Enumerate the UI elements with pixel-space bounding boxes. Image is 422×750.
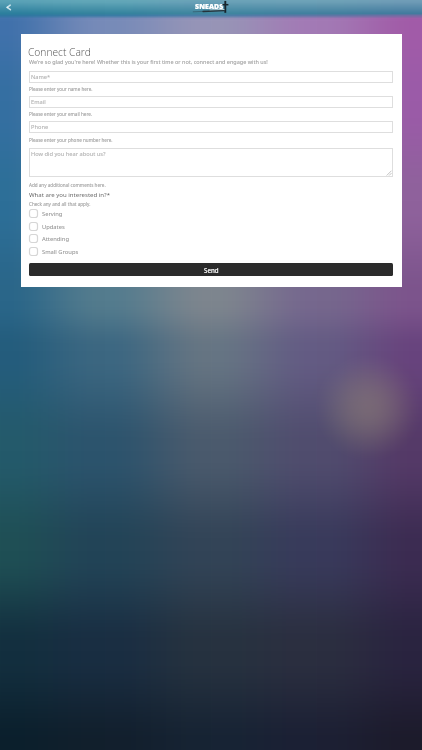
- staticText: What are you interested in?*: [29, 191, 111, 199]
- button[interactable]: Small Groups: [29, 247, 149, 256]
- button[interactable]: Send: [29, 263, 393, 276]
- staticText: How did you hear about us?: [31, 150, 106, 158]
- staticText: Connect Card: [28, 45, 91, 59]
- staticText: Please enter your name here.: [29, 86, 93, 92]
- button[interactable]: How did you hear about us?: [29, 148, 393, 177]
- button[interactable]: Phone: [29, 121, 393, 133]
- staticText: Check any and all that apply.: [29, 201, 91, 207]
- staticText: Phone: [31, 123, 49, 131]
- staticText: Please enter your email here.: [29, 111, 93, 117]
- staticText: Please enter your phone number here.: [29, 137, 113, 143]
- button[interactable]: Updates: [29, 222, 149, 231]
- staticText: Add any additional comments here.: [29, 182, 106, 188]
- button[interactable]: Back: [1, 1, 14, 14]
- button[interactable]: Email: [29, 96, 393, 108]
- staticText: Email: [31, 98, 46, 106]
- staticText: SNEADS: [195, 2, 224, 11]
- staticText: Name*: [31, 73, 51, 81]
- button[interactable]: Serving: [29, 209, 149, 218]
- staticText: Send: [204, 266, 219, 274]
- staticText: We're so glad you're here! Whether this …: [29, 58, 268, 65]
- staticText: Updates: [42, 223, 65, 231]
- button[interactable]: Name*: [29, 71, 393, 83]
- staticText: Serving: [42, 210, 63, 218]
- staticText: Small Groups: [42, 248, 79, 256]
- staticText: Attending: [42, 235, 69, 243]
- button[interactable]: Attending: [29, 234, 149, 243]
